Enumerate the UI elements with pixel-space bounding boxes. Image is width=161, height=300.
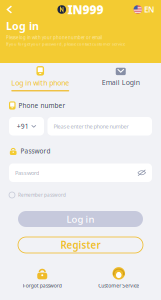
staticText: Customer Service (98, 282, 139, 289)
staticText: Log in (6, 18, 39, 33)
button[interactable]: Log in with phone (0, 63, 80, 91)
staticText: Log in (66, 213, 94, 225)
staticText: +91 (17, 122, 29, 131)
button[interactable]: Customer Service (80, 267, 157, 289)
staticText: Password (15, 169, 39, 176)
staticText: Log in with phone (11, 78, 69, 87)
staticText: Phone number (19, 101, 66, 110)
button[interactable]: Please enter the phone number (47, 117, 152, 135)
button[interactable]: Password (9, 163, 152, 182)
button[interactable]: Remember password (9, 190, 152, 200)
staticText: Password (20, 147, 50, 155)
button[interactable]: Forgot password (4, 267, 80, 289)
button[interactable]: Language (134, 3, 161, 16)
staticText: Please log in with your phone number or … (6, 34, 102, 40)
staticText: If you forget your password, please cont… (6, 41, 125, 47)
staticText: IN999 (67, 1, 103, 18)
staticText: Remember password (18, 192, 66, 198)
button[interactable]: Email Login (80, 63, 161, 91)
staticText: Register (60, 238, 100, 252)
staticText: Please enter the phone number (53, 122, 128, 130)
button[interactable]: Back (0, 3, 26, 16)
staticText: Email Login (102, 78, 140, 87)
button[interactable]: Log in (18, 211, 143, 227)
button[interactable]: +91 (9, 117, 44, 135)
button[interactable]: Register (18, 237, 143, 253)
staticText: EN (144, 4, 154, 15)
staticText: Forgot password (23, 282, 62, 289)
